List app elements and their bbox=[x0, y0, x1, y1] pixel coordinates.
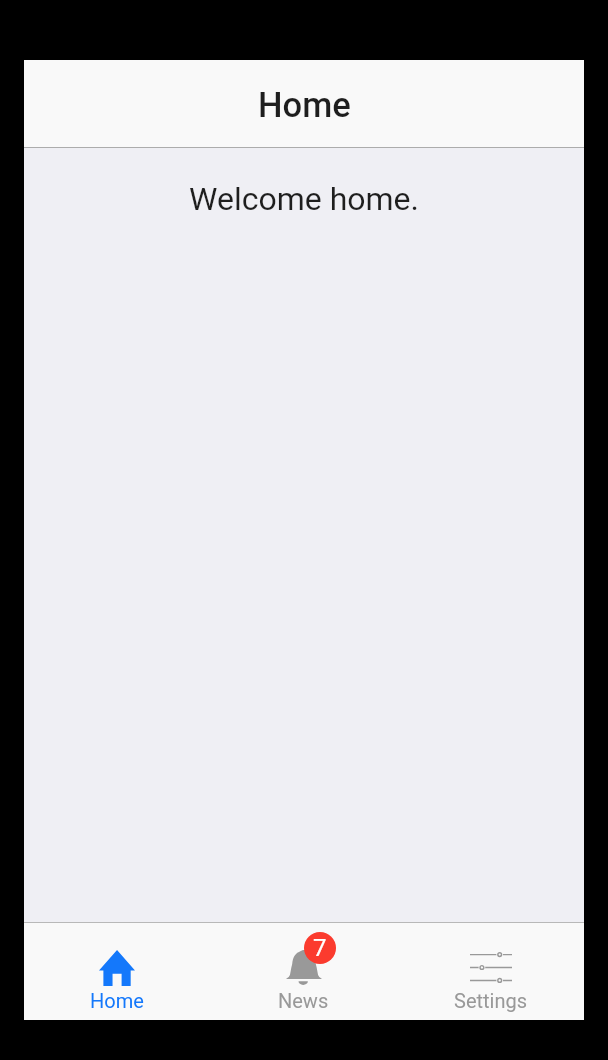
button[interactable]: Home bbox=[24, 923, 210, 1020]
staticText: Home bbox=[90, 989, 144, 1012]
staticText: Settings bbox=[454, 989, 528, 1012]
button[interactable]: News bbox=[210, 923, 397, 1020]
staticText: News bbox=[278, 989, 329, 1012]
staticText: 7 bbox=[313, 934, 327, 962]
staticText: Home bbox=[258, 85, 351, 125]
staticText: Welcome home. bbox=[189, 180, 419, 218]
button[interactable]: Settings bbox=[397, 923, 584, 1020]
